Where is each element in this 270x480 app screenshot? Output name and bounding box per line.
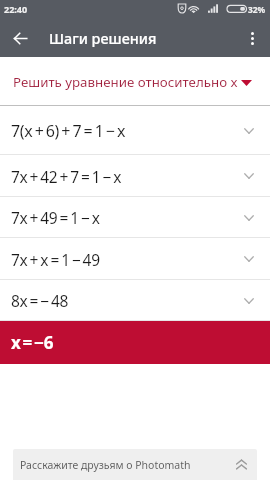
staticText: 7x + 49 = 1 − x — [11, 207, 100, 228]
button[interactable]: Back — [6, 24, 34, 52]
button[interactable]: 8x = − 48 — [0, 280, 270, 321]
staticText: Расскажите друзьям о Photomath — [20, 458, 191, 472]
staticText: 7x + 42 + 7 = 1 − x — [11, 166, 122, 187]
staticText: x = −6 — [11, 331, 54, 354]
staticText: Решить уравнение относительно x — [13, 73, 238, 91]
staticText: Шаги решения — [49, 29, 157, 49]
staticText: 22:40 — [4, 3, 28, 15]
button[interactable]: Решить уравнение относительно x — [0, 57, 270, 106]
button[interactable]: 7x + 49 = 1 − x — [0, 197, 270, 238]
button[interactable]: More options — [238, 24, 266, 52]
button[interactable]: 7x + x = 1 − 49 — [0, 238, 270, 280]
button[interactable]: Расскажите друзьям о Photomath — [13, 449, 257, 480]
button[interactable]: 7(x + 6) + 7 = 1 − x — [0, 106, 270, 155]
staticText: 32% — [248, 4, 266, 15]
staticText: 7x + x = 1 − 49 — [11, 249, 100, 270]
staticText: 8x = − 48 — [11, 290, 69, 311]
button[interactable]: 7x + 42 + 7 = 1 − x — [0, 155, 270, 197]
staticText: 7(x + 6) + 7 = 1 − x — [11, 120, 125, 142]
